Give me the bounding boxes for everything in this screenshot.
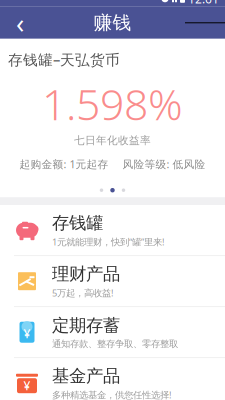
staticText: 赚钱 [93, 11, 131, 34]
staticText: 多种精选基金，供您任性选择! [52, 389, 172, 400]
staticText: 存钱罐–天弘货币 [8, 50, 120, 69]
staticText: 12:61 [188, 0, 219, 7]
staticText: 风险等级: 低风险 [122, 157, 205, 171]
staticText: 存钱罐 [52, 212, 103, 234]
staticText: 七日年化收益率 [74, 134, 151, 147]
staticText: 1元就能理财，快到“罐”里来! [52, 236, 165, 248]
staticText: 通知存款、整存争取、零存整取 [52, 338, 178, 350]
button[interactable]: 存钱罐 [0, 205, 225, 255]
staticText: 1.598% [42, 75, 183, 132]
staticText: ‹ [16, 5, 24, 40]
staticText: 基金产品 [52, 365, 120, 387]
staticText: 5万起，高收益! [52, 287, 114, 299]
staticText: ¥ [23, 378, 30, 394]
staticText: ¥ [23, 326, 30, 342]
button[interactable]: ¥ [0, 307, 225, 357]
button[interactable]: Back [0, 7, 40, 39]
staticText: 理财产品 [52, 263, 120, 285]
button[interactable]: 理财产品 [0, 256, 225, 306]
staticText: 定期存蓄 [52, 315, 120, 336]
button[interactable]: ¥ [0, 358, 225, 400]
staticText: 起购金额: 1元起存 [19, 157, 108, 171]
